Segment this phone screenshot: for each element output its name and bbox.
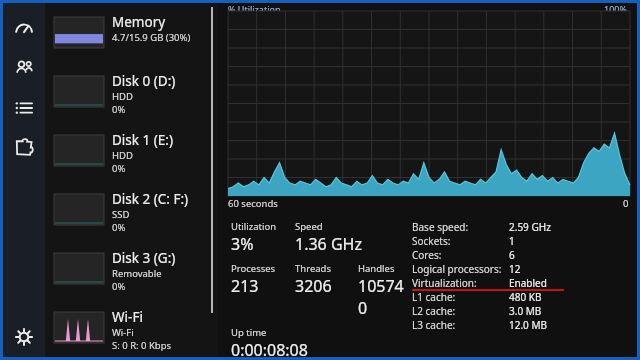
staticText: L1 cache: xyxy=(412,290,456,304)
staticText: Enabled xyxy=(509,276,547,290)
staticText: Disk 2 (C: F:) xyxy=(112,190,189,208)
staticText: 1.36 GHz xyxy=(295,233,362,255)
staticText: Removable xyxy=(112,267,162,280)
staticText: HDD xyxy=(112,149,133,162)
staticText: Sockets: xyxy=(412,234,451,248)
staticText: Memory xyxy=(112,13,166,31)
staticText: Disk 3 (G:) xyxy=(112,249,176,267)
staticText: 4.7/15.9 GB (30%) xyxy=(112,31,191,44)
staticText: 3% xyxy=(231,233,254,255)
button[interactable]: Details xyxy=(10,94,38,122)
button[interactable]: Disk 1 (E:) xyxy=(45,131,218,177)
staticText: Up time xyxy=(231,326,267,339)
staticText: 2.59 GHz xyxy=(509,220,551,234)
button[interactable]: Settings xyxy=(10,323,38,351)
staticText: 0% xyxy=(112,280,126,293)
staticText: Cores: xyxy=(412,248,442,262)
staticText: % Utilization xyxy=(228,3,281,11)
staticText: 60 seconds xyxy=(228,197,278,210)
staticText: L2 cache: xyxy=(412,304,456,318)
staticText: Disk 1 (E:) xyxy=(112,131,173,149)
staticText: HDD xyxy=(112,90,133,103)
staticText: Speed xyxy=(295,220,323,233)
staticText: 0% xyxy=(112,221,126,234)
staticText: Wi-Fi xyxy=(112,308,143,326)
button[interactable]: Memory xyxy=(45,13,218,59)
staticText: 0:00:08:08 xyxy=(231,339,308,357)
staticText: Wi-Fi xyxy=(112,326,134,339)
staticText: Utilization xyxy=(231,220,277,233)
staticText: 0 xyxy=(623,197,629,210)
staticText: Logical processors: xyxy=(412,262,502,276)
staticText: S: 0 R: 0 Kbps xyxy=(112,339,172,352)
staticText: 12 xyxy=(509,262,521,276)
staticText: Virtualization: xyxy=(412,276,477,290)
staticText: Disk 0 (D:) xyxy=(112,72,176,90)
staticText: 6 xyxy=(509,248,515,262)
button[interactable]: Performance xyxy=(10,16,38,44)
button[interactable]: App history xyxy=(10,55,38,83)
staticText: 480 KB xyxy=(509,290,542,304)
staticText: L3 cache: xyxy=(412,318,456,332)
staticText: 12.0 MB xyxy=(509,318,548,332)
staticText: 0% xyxy=(112,103,126,116)
staticText: 3206 xyxy=(295,275,332,297)
staticText: 213 xyxy=(231,275,259,297)
staticText: 3.0 MB xyxy=(509,304,542,318)
button[interactable]: Wi-Fi xyxy=(45,308,218,354)
staticText: Handles xyxy=(358,262,395,275)
staticText: 105740 xyxy=(358,275,408,319)
staticText: Base speed: xyxy=(412,220,469,234)
staticText: Processes xyxy=(231,262,276,275)
button[interactable]: Disk 0 (D:) xyxy=(45,72,218,118)
staticText: Threads xyxy=(295,262,331,275)
button[interactable]: Disk 2 (C: F:) xyxy=(45,190,218,236)
button[interactable]: Services xyxy=(10,133,38,161)
staticText: 0% xyxy=(112,162,126,175)
staticText: 100% xyxy=(604,3,627,11)
button[interactable]: Disk 3 (G:) xyxy=(45,249,218,295)
staticText: 1 xyxy=(509,234,515,248)
staticText: SSD xyxy=(112,208,130,221)
